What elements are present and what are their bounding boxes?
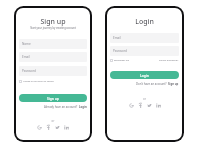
button[interactable]: I agree to the terms of service [19,80,54,83]
button[interactable]: Sign up [19,94,87,102]
staticText: I agree to the terms of service [23,80,54,83]
button[interactable]: Continue with LinkedIn [64,125,69,130]
staticText: Login [140,73,149,77]
button[interactable]: Forgot password? [159,59,179,62]
staticText: Remember me [114,59,129,62]
staticText: or [16,119,90,123]
staticText: Name [22,42,31,46]
button[interactable]: Continue with Facebook [46,125,51,130]
button[interactable]: Password [19,66,87,76]
button[interactable]: Continue with Twitter [55,125,60,130]
button[interactable]: Email [19,52,87,62]
staticText: Login [107,17,182,27]
staticText: Email [113,36,121,40]
button[interactable]: Name [19,39,87,49]
staticText: Already have an account? [44,105,79,109]
staticText: or [107,97,182,101]
button[interactable]: Login [110,71,179,79]
button[interactable]: Continue with Google [129,103,134,108]
button[interactable]: Continue with Twitter [147,103,152,108]
staticText: Start your journey by creating account [16,26,90,29]
staticText: Password [22,69,36,73]
staticText: Password [113,49,127,53]
button[interactable]: Continue with Google [37,125,42,130]
button[interactable]: Continue with LinkedIn [156,103,161,108]
button[interactable]: Sign up [168,82,179,86]
button[interactable]: Email [110,33,179,43]
button[interactable]: Login [79,105,87,109]
button[interactable]: Password [110,46,179,56]
staticText: Email [22,55,30,59]
staticText: Sign up [47,96,59,100]
staticText: Don't have an account? [136,82,168,86]
button[interactable]: Continue with Facebook [138,103,143,108]
staticText: Sign up [16,17,90,27]
button[interactable]: Remember me [110,59,129,62]
